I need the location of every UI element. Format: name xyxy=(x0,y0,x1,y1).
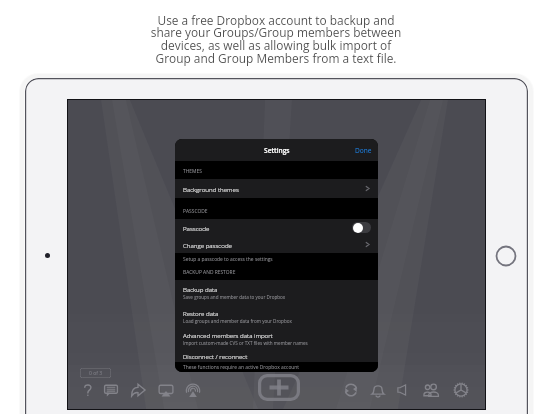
button[interactable]: Advanced members data import xyxy=(175,327,378,349)
staticText: Passcode xyxy=(183,224,352,232)
staticText: PASSCODE xyxy=(183,208,208,215)
staticText: BACKUP AND RESTORE xyxy=(183,269,236,276)
button[interactable]: Share xyxy=(130,382,146,398)
staticText: Restore data xyxy=(183,309,219,317)
button[interactable]: Disconnect / reconnect xyxy=(175,349,378,362)
staticText: Advanced members data import xyxy=(183,331,273,339)
staticText: Save groups and member data to your Drop… xyxy=(183,294,286,300)
button[interactable]: AirPlay xyxy=(158,382,174,398)
button[interactable]: Members xyxy=(423,382,439,398)
staticText: 0 of 3 xyxy=(89,370,103,377)
button[interactable]: Passcode xyxy=(175,219,378,236)
staticText: These functions require an active Dropbo… xyxy=(183,364,300,371)
button[interactable]: Add xyxy=(258,374,300,401)
other: Home xyxy=(495,245,517,267)
button[interactable]: Restore data xyxy=(175,304,378,327)
staticText: Background themes xyxy=(183,185,239,193)
button[interactable]: 0 of 3 xyxy=(80,368,111,378)
staticText: Change passcode xyxy=(183,241,233,249)
staticText: Setup a passcode to access the settings xyxy=(183,256,273,263)
button[interactable]: Sound xyxy=(395,382,411,398)
button[interactable]: Alerts xyxy=(370,382,386,398)
staticText: Import custom-made CVS or TXT files with… xyxy=(183,340,308,346)
staticText: Done xyxy=(355,146,372,155)
button[interactable]: Done xyxy=(349,141,378,160)
staticText: Settings xyxy=(264,146,290,155)
button[interactable]: Help xyxy=(80,382,96,398)
staticText: Backup data xyxy=(183,285,218,293)
staticText: THEMES xyxy=(183,168,202,175)
button[interactable]: Messages xyxy=(103,382,119,398)
button[interactable]: Change passcode xyxy=(175,236,378,253)
button[interactable]: Broadcast xyxy=(185,382,201,398)
button[interactable]: Background themes xyxy=(175,179,378,198)
staticText: Disconnect / reconnect xyxy=(183,352,248,360)
staticText: Load groups and member data from your Dr… xyxy=(183,318,292,324)
button[interactable]: Backup data xyxy=(175,280,378,304)
button[interactable]: Settings xyxy=(453,382,469,398)
staticText: Use a free Dropbox account to backup and… xyxy=(0,12,552,67)
button[interactable]: Sync xyxy=(343,382,359,398)
